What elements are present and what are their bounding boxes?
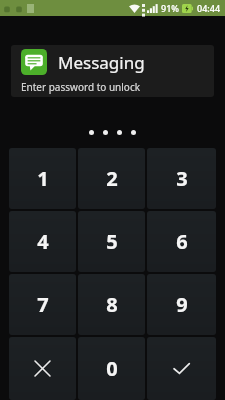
staticText: 1 xyxy=(37,165,49,192)
staticText: 7 xyxy=(37,291,49,318)
staticText: 0 xyxy=(106,355,118,382)
staticText: Enter password to unlock xyxy=(21,80,141,94)
button[interactable]: 8 xyxy=(78,274,145,335)
staticText: 8 xyxy=(106,291,118,318)
button[interactable]: 6 xyxy=(147,211,216,272)
staticText: 9 xyxy=(176,291,188,318)
staticText: 6 xyxy=(176,228,188,255)
button[interactable]: 9 xyxy=(147,274,216,335)
button[interactable]: 1 xyxy=(9,148,76,209)
staticText: Messaging xyxy=(58,51,145,74)
button[interactable]: 3 xyxy=(147,148,216,209)
button[interactable]: 4 xyxy=(9,211,76,272)
staticText: 3 xyxy=(176,165,188,192)
button[interactable]: 2 xyxy=(78,148,145,209)
button[interactable]: Confirm xyxy=(147,337,216,400)
staticText: 04:44 xyxy=(197,2,221,14)
button[interactable]: 5 xyxy=(78,211,145,272)
button[interactable]: Messaging xyxy=(11,45,214,97)
staticText: 4 xyxy=(37,228,49,255)
staticText: 2 xyxy=(106,165,118,192)
staticText: 91% xyxy=(161,2,179,14)
other: Messaging xyxy=(21,49,47,75)
staticText: 5 xyxy=(106,228,118,255)
button[interactable]: 7 xyxy=(9,274,76,335)
button[interactable]: 0 xyxy=(78,337,145,400)
button[interactable]: Cancel xyxy=(9,337,76,400)
